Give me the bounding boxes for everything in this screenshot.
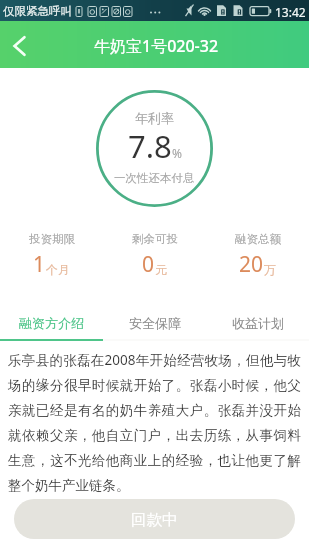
- staticText: 1: [33, 250, 46, 279]
- staticText: %: [172, 145, 182, 161]
- staticText: 收益计划: [232, 315, 284, 331]
- staticText: 牛奶宝1号020-32: [94, 35, 219, 57]
- staticText: 投资期限: [29, 232, 75, 246]
- staticText: 13:42: [275, 4, 306, 20]
- staticText: 剩余可投: [132, 232, 178, 246]
- button[interactable]: 融资方介绍: [0, 315, 103, 341]
- staticText: 回款中: [131, 510, 178, 530]
- staticText: 乐亭县的张磊在2008年开始经营牧场，但他与牧场的缘分很早时候就开始了。张磊小时…: [8, 351, 301, 494]
- staticText: 0: [142, 250, 155, 279]
- staticText: 元: [155, 262, 167, 277]
- button[interactable]: 收益计划: [206, 315, 309, 341]
- staticText: 20: [239, 250, 264, 279]
- button[interactable]: 安全保障: [103, 315, 206, 341]
- staticText: 年利率: [135, 110, 174, 126]
- staticText: 个月: [46, 262, 70, 277]
- staticText: 安全保障: [129, 315, 181, 331]
- staticText: 融资总额: [235, 232, 281, 246]
- staticText: 仅限紧急呼叫: [3, 4, 72, 18]
- staticText: 一次性还本付息: [114, 171, 195, 185]
- staticText: 融资方介绍: [19, 315, 84, 331]
- staticText: 7.8: [128, 125, 172, 167]
- button[interactable]: 回款中: [14, 499, 295, 539]
- button[interactable]: Back: [0, 21, 39, 68]
- staticText: 万: [264, 262, 276, 277]
